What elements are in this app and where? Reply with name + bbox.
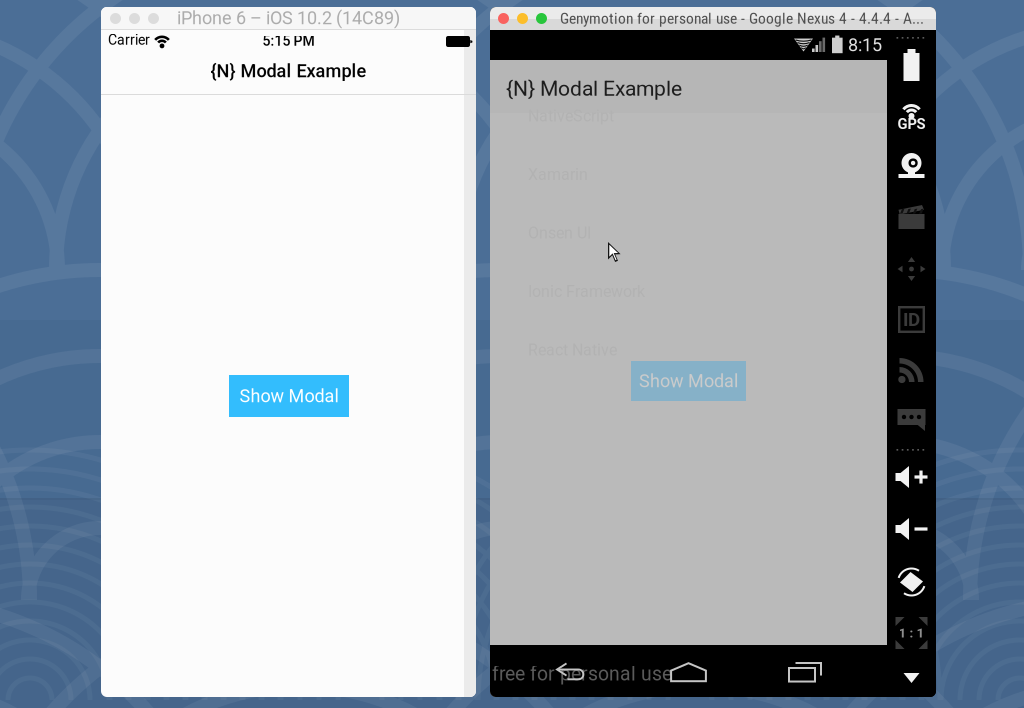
button[interactable]: Volume up bbox=[895, 465, 927, 489]
staticText: Carrier bbox=[108, 32, 150, 48]
staticText: Show Modal bbox=[639, 370, 738, 392]
button[interactable]: Rotate bbox=[895, 567, 927, 597]
button[interactable]: SMS bbox=[897, 409, 925, 431]
button[interactable]: Back bbox=[556, 663, 590, 685]
staticText: free for personal use bbox=[492, 663, 672, 685]
staticText: 1 : 1 bbox=[898, 625, 924, 641]
staticText: {N} Modal Example bbox=[506, 76, 682, 101]
staticText: 5:15 PM bbox=[262, 33, 314, 49]
button[interactable]: Network bbox=[898, 357, 924, 383]
button[interactable]: Scale 1:1 bbox=[895, 617, 927, 649]
button[interactable]: Show Modal bbox=[229, 375, 349, 417]
button[interactable]: GPS bbox=[894, 101, 928, 131]
staticText: ID bbox=[903, 309, 920, 330]
button[interactable]: Volume down bbox=[895, 517, 927, 541]
button[interactable]: Camera bbox=[896, 153, 926, 181]
staticText: {N} Modal Example bbox=[210, 60, 366, 82]
button[interactable]: Navigation pad bbox=[897, 257, 925, 281]
staticText: 8:15 bbox=[848, 34, 882, 56]
button[interactable]: Collapse toolbar bbox=[903, 673, 919, 683]
button[interactable]: Screen recording bbox=[897, 205, 925, 229]
button[interactable]: Battery bbox=[900, 49, 922, 81]
staticText: Show Modal bbox=[239, 385, 338, 407]
staticText: GPS bbox=[897, 115, 925, 133]
staticText: iPhone 6 – iOS 10.2 (14C89) bbox=[177, 7, 400, 29]
button[interactable]: Recent apps bbox=[788, 662, 822, 683]
staticText: Genymotion for personal use - Google Nex… bbox=[560, 9, 924, 27]
button[interactable]: Show Modal bbox=[631, 361, 746, 401]
button[interactable]: Home bbox=[670, 662, 707, 683]
button[interactable]: Identifiers bbox=[898, 306, 925, 333]
